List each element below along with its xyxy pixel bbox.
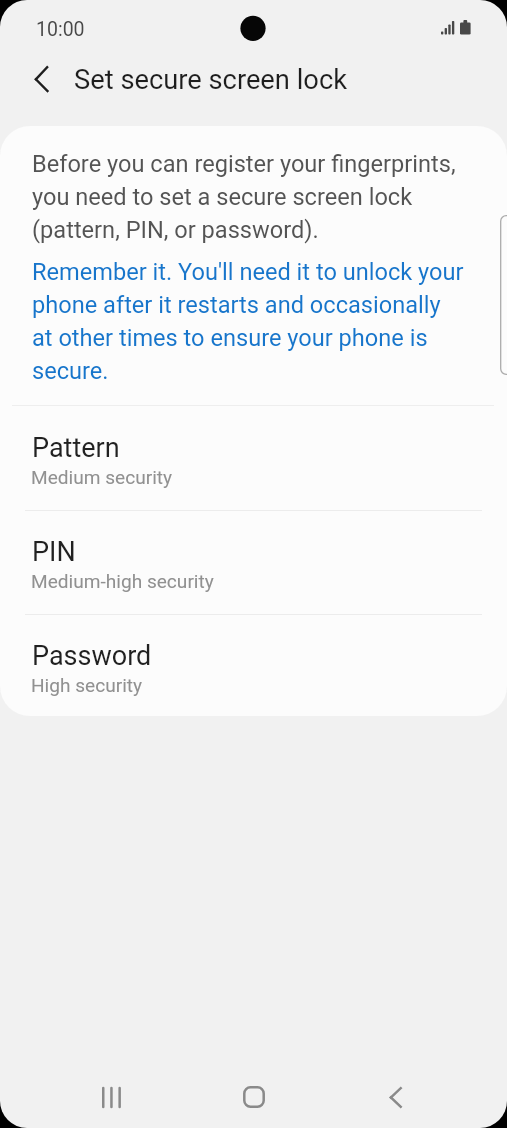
staticText: High security xyxy=(31,674,143,697)
staticText: Pattern xyxy=(32,433,120,463)
staticText: Medium security xyxy=(31,466,173,489)
button[interactable]: Home xyxy=(220,1063,288,1128)
button[interactable]: Back xyxy=(362,1063,430,1128)
button[interactable]: Recent apps xyxy=(78,1063,146,1128)
staticText: Medium-high security xyxy=(31,570,214,593)
staticText: Set secure screen lock xyxy=(74,64,348,96)
staticText: Remember it. You'll need it to unlock yo… xyxy=(32,254,464,386)
staticText: Password xyxy=(32,641,152,671)
staticText: 10:00 xyxy=(36,20,85,40)
button[interactable]: Navigate up xyxy=(17,54,66,103)
staticText: Before you can register your fingerprint… xyxy=(32,146,456,245)
button[interactable]: Password xyxy=(0,625,507,716)
button[interactable]: PIN xyxy=(0,521,507,614)
staticText: PIN xyxy=(32,537,76,567)
button[interactable]: Pattern xyxy=(0,417,507,510)
